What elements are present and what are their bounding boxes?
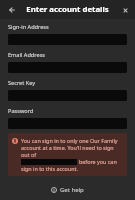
staticText: account at a time. You'll need to sign o…	[21, 144, 123, 158]
button[interactable]: Close	[119, 4, 131, 16]
staticText: Secret Key	[8, 79, 36, 87]
staticText: Password	[8, 107, 34, 115]
staticText: Get help	[60, 186, 84, 194]
staticText: Enter account details	[26, 4, 109, 15]
button[interactable]: Get help	[48, 184, 87, 196]
staticText: You can sign in to only one Our Family	[21, 137, 118, 144]
staticText: Email Address	[8, 51, 45, 59]
staticText: Sign-in Address	[8, 23, 49, 31]
button[interactable]: Back	[5, 3, 18, 16]
staticText: sign in to this account.	[21, 165, 78, 172]
staticText: before you can	[79, 158, 117, 165]
